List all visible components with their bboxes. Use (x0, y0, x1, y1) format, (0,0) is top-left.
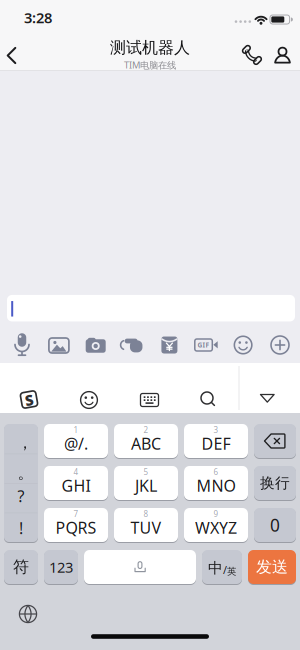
staticText: 发送 (256, 557, 288, 577)
button[interactable]: 0 (254, 508, 296, 542)
staticText: 7 (73, 509, 78, 519)
button[interactable]: 测试机器人 (110, 38, 190, 71)
button[interactable] (84, 550, 196, 584)
staticText: ， (17, 433, 33, 453)
button[interactable] (232, 334, 254, 356)
button[interactable] (259, 393, 275, 403)
staticText: S (25, 390, 33, 410)
button[interactable] (84, 335, 108, 355)
button[interactable] (78, 389, 100, 411)
staticText: 123 (49, 557, 73, 577)
button[interactable]: 7 (44, 508, 108, 542)
staticText: 测试机器人 (110, 38, 190, 58)
button[interactable]: 3 (184, 424, 248, 458)
staticText: 1 (73, 425, 78, 435)
button[interactable]: 9 (184, 508, 248, 542)
staticText: 符 (13, 557, 29, 577)
staticText: 3 (213, 425, 218, 435)
button[interactable] (199, 390, 216, 407)
button[interactable]: 5 (114, 466, 178, 500)
button[interactable]: 2 (114, 424, 178, 458)
staticText: TUV (130, 517, 161, 538)
staticText: DEF (201, 433, 230, 454)
button[interactable] (139, 392, 159, 407)
staticText: 9 (213, 509, 218, 519)
button[interactable] (47, 335, 71, 354)
staticText: MNO (196, 475, 235, 496)
button[interactable] (18, 604, 38, 624)
staticText: 6 (213, 467, 218, 477)
staticText: 英 (227, 565, 236, 577)
staticText: 8 (143, 509, 148, 519)
staticText: ? (17, 485, 24, 507)
button[interactable] (241, 44, 263, 66)
staticText: 5 (143, 467, 148, 477)
button[interactable]: 发送 (248, 550, 296, 584)
staticText: WXYZ (195, 517, 237, 538)
staticText: GHI (61, 475, 90, 496)
button[interactable]: GIF (193, 336, 219, 354)
button[interactable]: 换行 (254, 466, 296, 500)
button[interactable] (6, 47, 16, 64)
button[interactable]: S (20, 390, 38, 408)
staticText: 4 (73, 467, 78, 477)
staticText: PQRS (55, 517, 96, 538)
staticText: 换行 (260, 474, 290, 492)
button[interactable]: 4 (44, 466, 108, 500)
staticText: 2 (143, 425, 148, 435)
button[interactable] (272, 46, 292, 65)
button[interactable] (7, 295, 295, 321)
button[interactable] (10, 332, 34, 358)
staticText: @/. (64, 433, 88, 454)
staticText: ! (19, 517, 23, 539)
button[interactable]: 6 (184, 466, 248, 500)
staticText: 3:28 (24, 8, 52, 27)
staticText: / (223, 563, 227, 577)
staticText: 0 (270, 513, 280, 536)
staticText: GIF (197, 341, 209, 349)
button[interactable] (269, 334, 291, 356)
staticText: TIM电脑在线 (124, 59, 176, 71)
staticText: 中 (208, 559, 223, 577)
button[interactable] (159, 333, 179, 356)
staticText: JKL (135, 475, 157, 496)
button[interactable] (254, 424, 296, 458)
button[interactable]: 中 (202, 550, 242, 584)
staticText: ABC (131, 433, 161, 454)
button[interactable]: 符 (4, 550, 38, 584)
button[interactable]: 8 (114, 508, 178, 542)
button[interactable]: 123 (44, 550, 78, 584)
staticText: 。 (17, 463, 33, 483)
button[interactable] (120, 334, 146, 356)
button[interactable]: ， (4, 424, 38, 542)
button[interactable]: 1 (44, 424, 108, 458)
